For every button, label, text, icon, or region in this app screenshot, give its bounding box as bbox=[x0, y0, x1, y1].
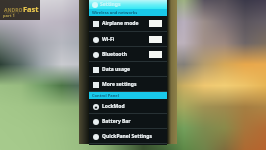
button[interactable]: Data usage bbox=[89, 62, 167, 76]
staticText: Settings bbox=[100, 1, 121, 8]
button[interactable]: QuickPanel Settings bbox=[89, 129, 167, 143]
staticText: Battery Bar bbox=[102, 118, 131, 125]
staticText: Wireless and networks bbox=[92, 10, 138, 15]
button[interactable]: Wireless and networks bbox=[89, 9, 167, 16]
staticText: part 1 bbox=[3, 13, 15, 18]
button[interactable]: Battery Bar bbox=[89, 114, 167, 128]
staticText: Bluetooth bbox=[102, 51, 127, 58]
button[interactable]: Settings bbox=[89, 0, 167, 9]
staticText: QuickPanel Settings bbox=[102, 133, 153, 140]
staticText: review s bbox=[5, 10, 20, 15]
button[interactable]: Wi-Fi bbox=[89, 32, 167, 46]
staticText: Fast bbox=[23, 4, 39, 14]
staticText: Control Panel bbox=[92, 93, 119, 98]
staticText: Data usage bbox=[102, 66, 131, 73]
button[interactable]: Airplane mode bbox=[89, 16, 167, 31]
staticText: Wi-Fi bbox=[102, 36, 115, 43]
staticText: LockMod bbox=[102, 103, 125, 110]
button[interactable]: More settings bbox=[89, 77, 167, 91]
staticText: More settings bbox=[102, 81, 137, 88]
button[interactable]: Bluetooth bbox=[89, 47, 167, 61]
staticText: ANDRO bbox=[4, 7, 23, 14]
staticText: Airplane mode bbox=[102, 20, 139, 27]
button[interactable]: Control Panel bbox=[89, 92, 167, 99]
button[interactable]: LockMod bbox=[89, 99, 167, 113]
